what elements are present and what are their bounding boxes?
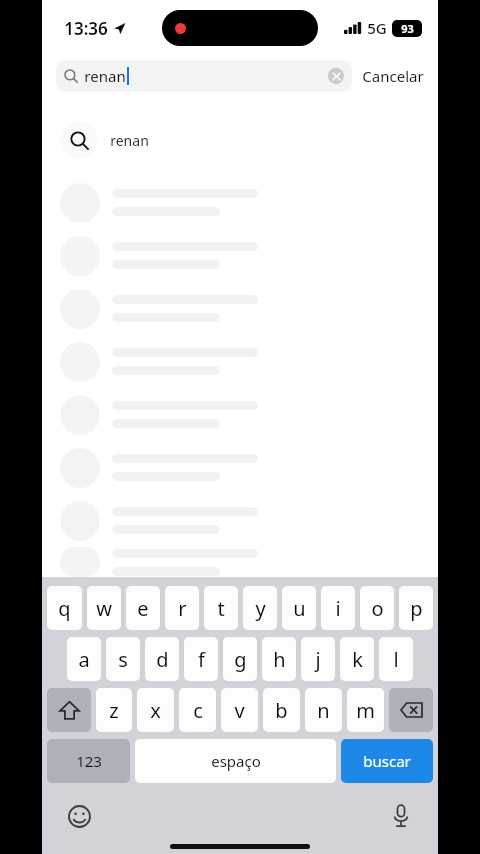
button[interactable]: q <box>47 586 82 630</box>
staticText: h <box>273 646 286 673</box>
button[interactable]: b <box>263 688 300 732</box>
staticText: y <box>255 595 266 622</box>
staticText: q <box>58 595 71 622</box>
staticText: e <box>137 595 149 622</box>
staticText: n <box>317 697 330 724</box>
staticText: t <box>217 595 225 622</box>
button[interactable]: f <box>184 637 218 681</box>
staticText: buscar <box>363 751 411 771</box>
staticText: v <box>234 697 245 724</box>
button[interactable]: Cancelar <box>360 62 426 90</box>
button[interactable]: Backspace <box>389 688 433 732</box>
button[interactable]: renan <box>42 118 438 162</box>
staticText: 93 <box>401 21 414 36</box>
button[interactable]: v <box>221 688 258 732</box>
button[interactable]: buscar <box>341 739 433 783</box>
button[interactable]: t <box>204 586 238 630</box>
button[interactable]: Shift <box>47 688 91 732</box>
staticText: r <box>178 595 187 622</box>
button[interactable]: Limpar <box>328 68 344 84</box>
button[interactable]: u <box>282 586 316 630</box>
staticText: a <box>78 646 90 673</box>
button[interactable]: c <box>179 688 216 732</box>
button[interactable]: n <box>305 688 342 732</box>
staticText: z <box>109 697 119 724</box>
button[interactable]: a <box>67 637 101 681</box>
button[interactable]: g <box>223 637 257 681</box>
button[interactable]: renan <box>56 60 352 92</box>
staticText: x <box>150 697 161 724</box>
button[interactable]: w <box>87 586 121 630</box>
staticText: i <box>335 595 341 622</box>
staticText: w <box>96 595 112 622</box>
staticText: Cancelar <box>362 66 424 86</box>
staticText: c <box>193 697 203 724</box>
staticText: p <box>410 595 423 622</box>
button[interactable]: x <box>137 688 174 732</box>
staticText: f <box>198 646 205 673</box>
staticText: l <box>393 646 399 673</box>
button[interactable]: m <box>347 688 384 732</box>
button[interactable]: p <box>399 586 433 630</box>
staticText: s <box>118 646 128 673</box>
staticText: o <box>371 595 384 622</box>
staticText: u <box>293 595 306 622</box>
staticText: j <box>315 646 321 673</box>
staticText: 5G <box>367 18 387 38</box>
button[interactable]: d <box>145 637 179 681</box>
button[interactable]: y <box>243 586 277 630</box>
button[interactable]: h <box>262 637 296 681</box>
button[interactable]: o <box>360 586 394 630</box>
staticText: k <box>352 646 363 673</box>
staticText: 123 <box>76 751 102 771</box>
button[interactable]: l <box>379 637 413 681</box>
button[interactable]: e <box>126 586 160 630</box>
button[interactable]: Ditado <box>386 801 416 831</box>
button[interactable]: i <box>321 586 355 630</box>
button[interactable]: z <box>96 688 132 732</box>
staticText: b <box>275 697 288 724</box>
staticText: renan <box>110 131 149 150</box>
button[interactable]: r <box>165 586 199 630</box>
staticText: d <box>156 646 169 673</box>
button[interactable]: s <box>106 637 140 681</box>
button[interactable]: espaço <box>135 739 336 783</box>
button[interactable]: j <box>301 637 335 681</box>
staticText: espaço <box>211 751 261 771</box>
staticText: g <box>234 646 247 673</box>
staticText: renan <box>84 66 126 86</box>
button[interactable]: k <box>340 637 374 681</box>
staticText: m <box>356 697 375 724</box>
button[interactable]: Emoji <box>64 801 94 831</box>
button[interactable]: 123 <box>47 739 130 783</box>
staticText: 13:36 <box>64 17 108 40</box>
